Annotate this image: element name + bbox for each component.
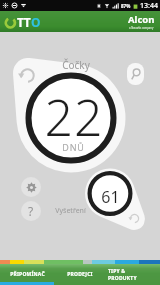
button[interactable]: Reset exam counter: [129, 213, 140, 224]
staticText: 22: [44, 83, 104, 151]
staticText: PŘIPOMÍNAČ: [10, 271, 45, 278]
button[interactable]: PŘIPOMÍNAČ: [0, 264, 54, 285]
button[interactable]: PRODEJCI: [54, 264, 105, 285]
staticText: 61: [101, 186, 120, 208]
staticText: Čočky: [62, 58, 90, 72]
staticText: PRODEJCI: [67, 271, 93, 278]
button[interactable]: TIPY & PRODUKTY: [105, 264, 160, 285]
button[interactable]: Eye drops: [127, 63, 144, 85]
button[interactable]: Reset lens counter: [19, 67, 36, 84]
staticText: 13:44: [140, 1, 158, 11]
staticText: TT: [17, 14, 31, 30]
staticText: DNŮ: [62, 141, 85, 153]
staticText: O: [31, 14, 41, 30]
staticText: TIPY & PRODUKTY: [108, 268, 137, 281]
button[interactable]: Settings: [21, 177, 41, 197]
button[interactable]: Help: [21, 201, 41, 221]
staticText: 87%: [121, 3, 131, 9]
staticText: a Novartis company: [129, 26, 154, 30]
staticText: ?: [28, 203, 34, 219]
staticText: Vyšetření: [55, 206, 86, 216]
staticText: Alcon: [128, 13, 155, 26]
